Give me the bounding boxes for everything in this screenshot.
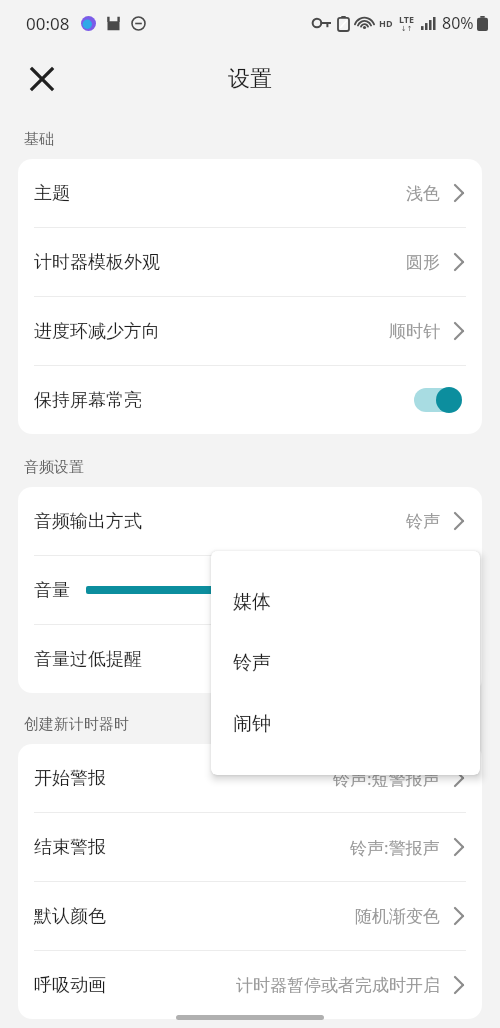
button[interactable]: 铃声 [211, 632, 480, 693]
staticText: 设置 [228, 65, 272, 93]
staticText: 创建新计时器时 [24, 715, 129, 734]
button[interactable]: 音量过低提醒 [18, 625, 482, 693]
button[interactable]: 保持屏幕常亮 [18, 366, 482, 434]
staticText: 铃声 [406, 511, 440, 532]
staticText: 音频输出方式 [34, 510, 142, 533]
staticText: HD [379, 17, 393, 29]
staticText: 进度环减少方向 [34, 320, 160, 343]
staticText: ↓↑ [401, 25, 413, 33]
staticText: 呼吸动画 [34, 974, 106, 997]
button[interactable]: 音频输出方式 [18, 487, 482, 556]
button[interactable]: 呼吸动画 [18, 951, 482, 1019]
staticText: 音频设置 [24, 458, 84, 477]
staticText: 结束警报 [34, 836, 106, 859]
staticText: 随机渐变色 [355, 906, 440, 927]
staticText: 主题 [34, 182, 70, 205]
staticText: 铃声:警报声 [350, 836, 440, 859]
staticText: 00:08 [26, 12, 70, 35]
staticText: 开始警报 [34, 767, 106, 790]
button[interactable]: 开始警报 [18, 744, 482, 813]
staticText: 顺时针 [389, 321, 440, 342]
staticText: 默认颜色 [34, 905, 106, 928]
button[interactable]: 媒体 [211, 571, 480, 632]
button[interactable]: 计时器模板外观 [18, 228, 482, 297]
button[interactable]: 音量 [18, 556, 482, 625]
button[interactable]: 进度环减少方向 [18, 297, 482, 366]
button[interactable]: Close [14, 51, 70, 107]
staticText: 铃声 [233, 651, 271, 675]
button[interactable]: 闹钟 [211, 693, 480, 754]
staticText: 保持屏幕常亮 [34, 389, 142, 412]
staticText: 80% [442, 12, 474, 34]
staticText: 铃声:短警报声 [333, 767, 440, 790]
staticText: 媒体 [233, 590, 271, 614]
staticText: 音量过低提醒 [34, 648, 142, 671]
staticText: 音量 [34, 579, 70, 602]
staticText: 基础 [24, 130, 54, 149]
staticText: 闹钟 [233, 712, 271, 736]
button[interactable]: 默认颜色 [18, 882, 482, 951]
staticText: 圆形 [406, 252, 440, 273]
button[interactable]: 结束警报 [18, 813, 482, 882]
staticText: LTE [399, 13, 415, 25]
staticText: 浅色 [406, 183, 440, 204]
button[interactable]: 主题 [18, 159, 482, 228]
staticText: 计时器暂停或者完成时开启 [236, 975, 440, 996]
staticText: 计时器模板外观 [34, 251, 160, 274]
